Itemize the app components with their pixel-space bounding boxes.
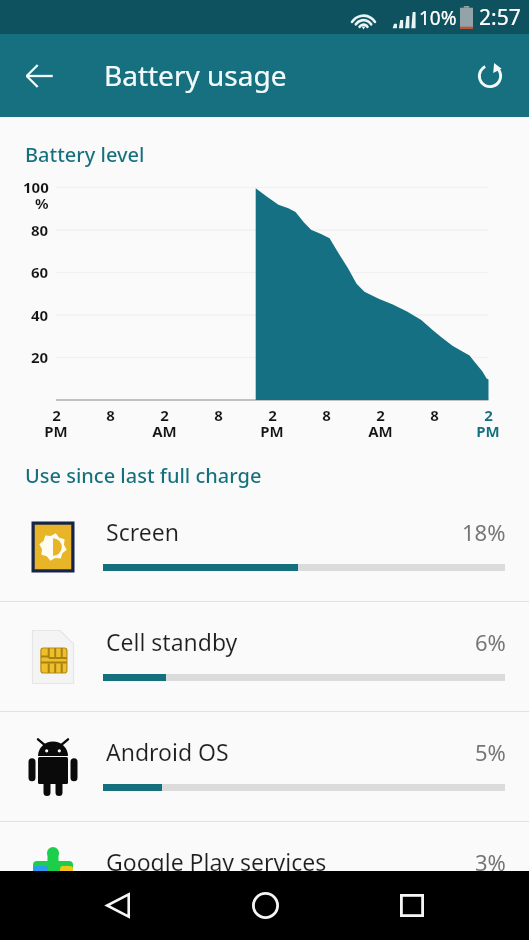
staticText: Use since last full charge [25, 462, 262, 489]
staticText: 40 [31, 305, 49, 325]
staticText: Battery usage [104, 56, 287, 94]
staticText: Android OS [106, 736, 229, 767]
staticText: 2 [52, 405, 61, 425]
staticText: AM [368, 421, 393, 441]
button[interactable]: Back [9, 46, 69, 106]
button[interactable]: Google Play services [0, 822, 529, 931]
staticText: PM [44, 421, 68, 441]
staticText: 10% [419, 5, 457, 31]
staticText: 8 [106, 405, 115, 425]
staticText: Cell standby [106, 626, 238, 657]
staticText: 3% [475, 847, 506, 877]
staticText: 80 [31, 220, 49, 240]
staticText: 5% [475, 737, 506, 767]
staticText: 8 [322, 405, 331, 425]
staticText: 8 [430, 405, 439, 425]
staticText: 2 [484, 405, 493, 425]
staticText: Screen [106, 516, 179, 547]
button[interactable]: Cell standby [0, 602, 529, 711]
staticText: 2:57 [479, 3, 521, 32]
button[interactable]: Android OS [0, 712, 529, 821]
staticText: 2 [376, 405, 385, 425]
staticText: 60 [31, 262, 49, 282]
staticText: PM [476, 421, 500, 441]
button[interactable]: Back [87, 875, 147, 935]
staticText: Battery level [25, 141, 145, 168]
staticText: Google Play services [106, 846, 327, 877]
staticText: % [35, 193, 49, 213]
button[interactable]: Recents [382, 875, 442, 935]
staticText: 18% [462, 517, 506, 547]
staticText: 20 [31, 347, 49, 367]
staticText: 100 [23, 177, 49, 197]
staticText: 6% [475, 627, 506, 657]
staticText: AM [152, 421, 177, 441]
staticText: 8 [214, 405, 223, 425]
staticText: 2 [160, 405, 169, 425]
button[interactable]: Home [235, 875, 295, 935]
button[interactable]: Screen [0, 492, 529, 601]
staticText: PM [260, 421, 284, 441]
button[interactable]: Refresh [460, 46, 520, 106]
staticText: 2 [268, 405, 277, 425]
